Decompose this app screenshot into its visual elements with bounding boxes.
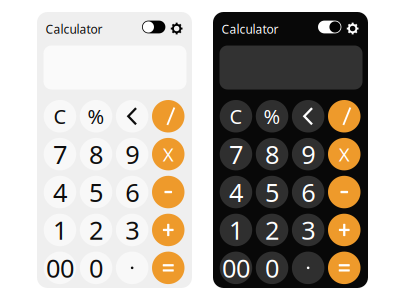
staticText: 3 [125, 213, 139, 247]
button[interactable]: Equals [152, 252, 184, 284]
button[interactable]: 8 [80, 138, 112, 170]
button[interactable]: C [44, 100, 76, 132]
staticText: C [53, 103, 66, 130]
staticText: 6 [301, 175, 315, 209]
button[interactable]: Minus [152, 176, 184, 208]
staticText: 5 [265, 175, 279, 209]
button[interactable]: Dark mode [318, 21, 341, 33]
staticText: 9 [125, 137, 139, 171]
button[interactable]: Delete [292, 100, 324, 132]
staticText: % [264, 103, 281, 130]
staticText: 0 [265, 251, 279, 285]
staticText: 2 [89, 213, 103, 247]
button[interactable]: 1 [220, 214, 252, 246]
button[interactable]: Decimal point [116, 252, 148, 284]
button[interactable]: 3 [116, 214, 148, 246]
staticText: 8 [265, 137, 279, 171]
button[interactable]: 4 [220, 176, 252, 208]
staticText: 00 [222, 251, 250, 285]
staticText: 7 [229, 137, 243, 171]
staticText: 1 [229, 213, 243, 247]
staticText: 1 [53, 213, 67, 247]
staticText: X [163, 142, 174, 167]
button[interactable]: Minus [328, 176, 360, 208]
button[interactable]: Decimal point [292, 252, 324, 284]
button[interactable]: Settings [170, 22, 183, 35]
button[interactable]: Plus [328, 214, 360, 246]
staticText: 2 [265, 213, 279, 247]
button[interactable]: 7 [44, 138, 76, 170]
button[interactable]: 00 [220, 252, 252, 284]
button[interactable]: Equals [328, 252, 360, 284]
button[interactable]: 4 [44, 176, 76, 208]
button[interactable]: C [220, 100, 252, 132]
staticText: 0 [89, 251, 103, 285]
button[interactable]: Divide [328, 100, 360, 132]
button[interactable]: 3 [292, 214, 324, 246]
staticText: 3 [301, 213, 315, 247]
button[interactable]: 9 [116, 138, 148, 170]
staticText: C [229, 103, 242, 130]
button[interactable]: 6 [292, 176, 324, 208]
staticText: 9 [301, 137, 315, 171]
button[interactable]: 6 [116, 176, 148, 208]
staticText: 6 [125, 175, 139, 209]
button[interactable]: 8 [256, 138, 288, 170]
button[interactable]: % [80, 100, 112, 132]
staticText: Calculator [45, 21, 102, 37]
button[interactable]: 2 [256, 214, 288, 246]
button[interactable]: Plus [152, 214, 184, 246]
staticText: X [339, 142, 350, 167]
staticText: 4 [229, 175, 243, 209]
button[interactable]: 0 [80, 252, 112, 284]
button[interactable]: X [152, 138, 184, 170]
button[interactable]: 7 [220, 138, 252, 170]
button[interactable]: 9 [292, 138, 324, 170]
button[interactable]: 0 [256, 252, 288, 284]
button[interactable]: Dark mode [142, 21, 165, 33]
button[interactable]: Delete [116, 100, 148, 132]
button[interactable]: 00 [44, 252, 76, 284]
button[interactable]: Divide [152, 100, 184, 132]
button[interactable]: 5 [80, 176, 112, 208]
button[interactable]: 5 [256, 176, 288, 208]
staticText: % [88, 103, 105, 130]
button[interactable]: % [256, 100, 288, 132]
staticText: 00 [46, 251, 74, 285]
staticText: 8 [89, 137, 103, 171]
button[interactable]: 1 [44, 214, 76, 246]
button[interactable]: X [328, 138, 360, 170]
button[interactable]: Settings [346, 22, 359, 35]
button[interactable]: 2 [80, 214, 112, 246]
staticText: 5 [89, 175, 103, 209]
staticText: 4 [53, 175, 67, 209]
staticText: 7 [53, 137, 67, 171]
staticText: Calculator [221, 21, 278, 37]
